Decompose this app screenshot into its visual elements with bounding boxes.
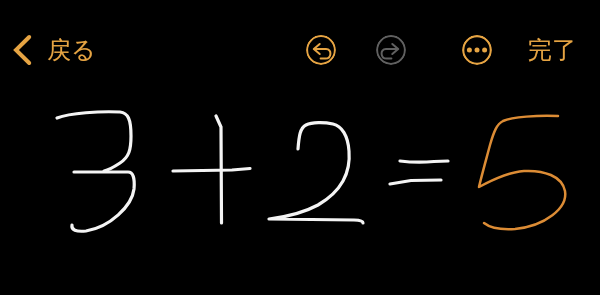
button[interactable]: More options xyxy=(462,35,492,65)
button[interactable]: 戻る xyxy=(6,28,104,72)
button[interactable]: Redo xyxy=(376,35,406,65)
staticText: 戻る xyxy=(47,35,96,65)
button[interactable]: Undo xyxy=(306,35,336,65)
staticText: 完了 xyxy=(528,35,576,65)
button[interactable]: 完了 xyxy=(518,28,586,72)
